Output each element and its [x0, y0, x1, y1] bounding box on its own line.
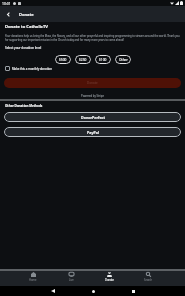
- button[interactable]: Back: [3, 9, 13, 19]
- staticText: Your donations help us bring the Mass, t…: [5, 34, 180, 42]
- button[interactable]: Donate: [4, 78, 181, 88]
- staticText: Other: [119, 58, 128, 62]
- staticText: Search: [144, 278, 153, 282]
- staticText: Make this a monthly donation: [12, 67, 52, 71]
- button[interactable]: $500: [55, 55, 71, 64]
- staticText: Donate: [19, 12, 34, 17]
- button[interactable]: $250: [75, 55, 91, 64]
- staticText: Powered by Stripe: [0, 94, 185, 98]
- button[interactable]: Donate: [90, 272, 129, 282]
- staticText: PayPal: [87, 130, 99, 135]
- button[interactable]: DonorPerfect: [4, 112, 181, 122]
- button[interactable]: Search: [129, 272, 168, 282]
- button[interactable]: Live: [52, 272, 90, 282]
- staticText: Other Donation Methods: [5, 104, 43, 108]
- staticText: Live: [69, 278, 74, 282]
- button[interactable]: Home: [14, 272, 52, 282]
- staticText: Select your donation level: [5, 46, 42, 50]
- staticText: Donate: [87, 81, 98, 85]
- button[interactable]: PayPal: [4, 127, 181, 137]
- button[interactable]: Other: [115, 55, 131, 64]
- staticText: $250: [79, 58, 87, 62]
- staticText: Donate: [105, 278, 114, 282]
- staticText: $500: [59, 58, 67, 62]
- button[interactable]: Make this a monthly donation: [5, 66, 52, 71]
- staticText: Donate to CatholicTV: [5, 24, 49, 30]
- staticText: DonorPerfect: [81, 115, 105, 120]
- staticText: 10:01: [2, 1, 11, 6]
- staticText: $100: [99, 58, 107, 62]
- staticText: Home: [29, 278, 37, 282]
- button[interactable]: $100: [95, 55, 111, 64]
